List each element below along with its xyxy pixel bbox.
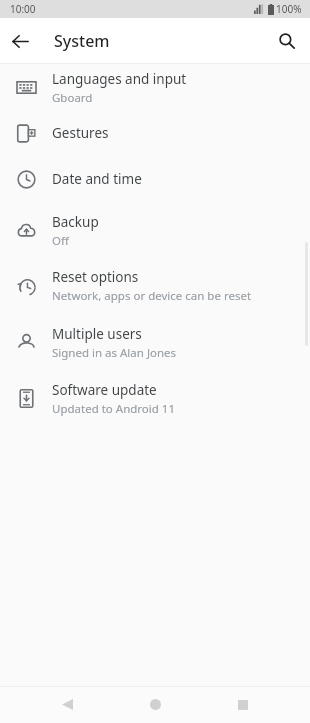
button[interactable]: Back <box>44 686 90 723</box>
staticText: Signed in as Alan Jones <box>52 345 177 361</box>
staticText: 10:00 <box>10 2 36 16</box>
button[interactable]: Back <box>6 27 34 55</box>
button[interactable]: Gestures <box>0 111 310 155</box>
button[interactable]: Backup <box>0 203 310 258</box>
staticText: 100% <box>276 2 302 16</box>
staticText: Languages and input <box>52 70 187 88</box>
staticText: Updated to Android 11 <box>52 401 175 417</box>
staticText: Gboard <box>52 90 93 106</box>
staticText: Backup <box>52 213 99 231</box>
staticText: Software update <box>52 381 157 399</box>
staticText: Off <box>52 233 69 249</box>
staticText: Date and time <box>52 170 142 188</box>
button[interactable]: Software update <box>0 371 310 426</box>
button[interactable]: Reset options <box>0 258 310 314</box>
staticText: Network, apps or device can be reset <box>52 288 252 304</box>
button[interactable]: Languages and input <box>0 64 310 111</box>
button[interactable]: Search <box>272 26 302 56</box>
staticText: Reset options <box>52 268 139 286</box>
button[interactable]: Home <box>132 686 178 723</box>
button[interactable]: Multiple users <box>0 314 310 371</box>
staticText: Gestures <box>52 124 109 142</box>
staticText: Multiple users <box>52 325 142 343</box>
staticText: System <box>54 30 110 52</box>
button[interactable]: Recent apps <box>220 686 266 723</box>
button[interactable]: Date and time <box>0 155 310 203</box>
